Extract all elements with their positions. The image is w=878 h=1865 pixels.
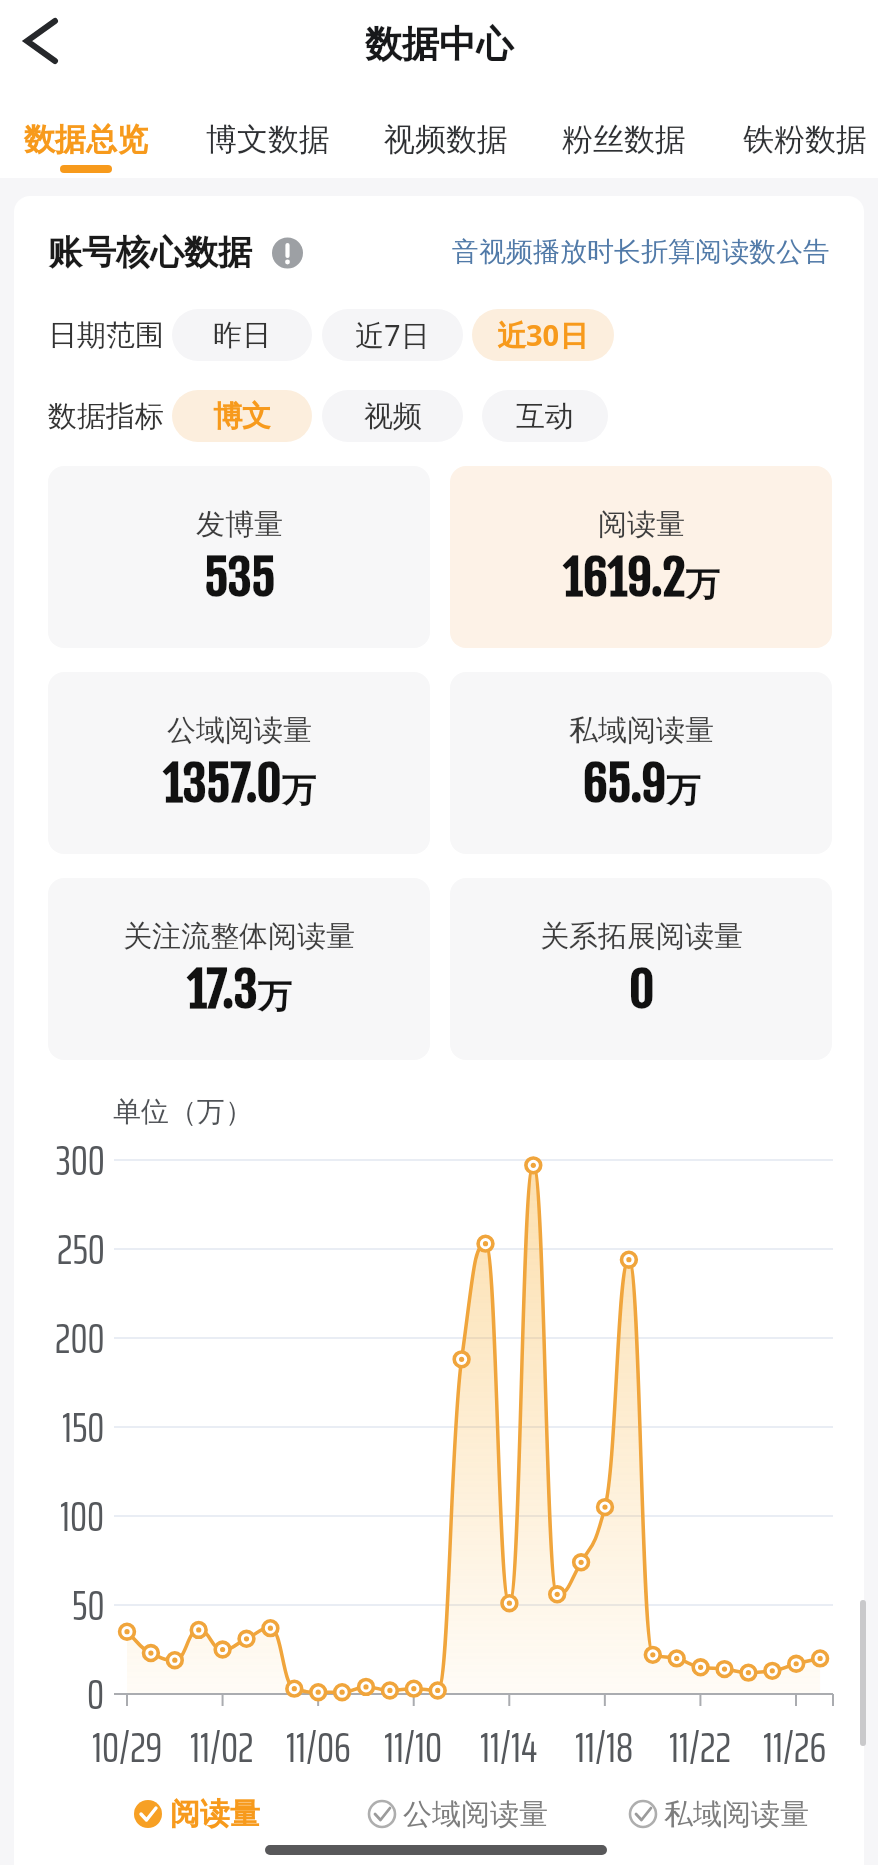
staticText: 单位（万） [113,1094,253,1129]
staticText: 视频数据 [384,120,508,159]
button[interactable]: 近30日 [472,309,614,361]
staticText: 粉丝数据 [562,120,686,159]
staticText: 数据指标 [48,398,164,435]
button[interactable]: 关系拓展阅读量 [450,878,832,1060]
staticText: 11/10 [384,1713,443,1781]
staticText: 公域阅读量 [403,1796,548,1833]
staticText: 互动 [516,398,574,435]
staticText: 关注流整体阅读量 [123,918,355,955]
button[interactable]: 发博量 [48,466,430,648]
button[interactable]: 公域阅读量 [403,1779,878,1849]
staticText: 阅读量 [598,506,685,543]
staticText: 关系拓展阅读量 [540,918,743,955]
staticText: 公域阅读量 [167,712,312,749]
staticText: 11/06 [286,1713,351,1781]
button[interactable] [14,14,70,70]
staticText: 11/18 [575,1713,634,1781]
staticText: 11/22 [669,1713,731,1781]
staticText: 0 [629,959,655,1021]
button[interactable]: 数据总览 [6,108,166,170]
staticText: 音视频播放时长折算阅读数公告 [452,235,830,269]
button[interactable]: 阅读量 [450,466,832,648]
staticText: 11/02 [190,1713,254,1781]
button[interactable]: 公域阅读量 [48,672,430,854]
staticText: 50 [72,1571,105,1639]
staticText: 数据中心 [365,21,513,68]
staticText: 10/29 [92,1713,163,1781]
button[interactable]: 视频数据 [366,108,526,170]
button[interactable]: 博文数据 [188,108,348,170]
button[interactable]: 关注流整体阅读量 [48,878,430,1060]
staticText: 数据总览 [24,120,148,159]
staticText: 200 [55,1304,105,1372]
staticText: 11/26 [763,1713,827,1781]
staticText: 535 [204,547,276,609]
staticText: 阅读量 [170,1795,260,1833]
staticText: 发博量 [196,506,283,543]
staticText: 账号核心数据 [48,231,252,274]
button[interactable]: 私域阅读量 [450,672,832,854]
staticText: 1619.2万 [563,547,720,609]
staticText: 视频 [364,398,422,435]
button[interactable]: 博文 [172,390,312,442]
staticText: 65.9万 [583,753,701,815]
staticText: 博文 [213,398,271,435]
staticText: 近30日 [497,315,589,355]
button[interactable]: 音视频播放时长折算阅读数公告 [130,217,830,287]
button[interactable]: 粉丝数据 [544,108,704,170]
staticText: 0 [87,1660,105,1728]
staticText: 250 [57,1215,105,1283]
button[interactable]: 互动 [482,390,608,442]
staticText: 150 [62,1393,105,1461]
staticText: 昨日 [213,317,271,354]
button[interactable]: 视频 [322,390,463,442]
staticText: 17.3万 [187,959,292,1021]
staticText: 私域阅读量 [569,712,714,749]
staticText: 1357.0万 [163,753,316,815]
button[interactable]: 私域阅读量 [664,1779,878,1849]
staticText: 私域阅读量 [664,1796,809,1833]
staticText: 近7日 [355,315,430,355]
staticText: 日期范围 [48,317,164,354]
staticText: 铁粉数据 [743,120,867,159]
staticText: 博文数据 [206,120,330,159]
button[interactable]: 昨日 [172,309,312,361]
staticText: 100 [60,1482,105,1550]
button[interactable]: 近7日 [322,309,463,361]
staticText: 11/14 [480,1713,538,1781]
staticText: 300 [56,1126,105,1194]
button[interactable]: 铁粉数据 [725,108,878,170]
button[interactable]: 阅读量 [170,1779,870,1849]
